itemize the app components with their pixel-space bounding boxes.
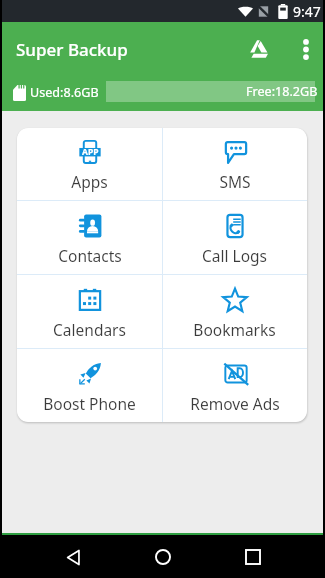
button[interactable]: Back — [54, 538, 92, 576]
button[interactable]: APP — [17, 128, 162, 200]
staticText: Free:18.2GB — [246, 83, 318, 100]
button[interactable]: Google Drive backup — [240, 31, 276, 67]
staticText: SMS — [219, 171, 251, 192]
staticText: 9:47 — [293, 2, 321, 21]
button[interactable]: Contacts — [17, 201, 162, 274]
button[interactable]: SMS — [162, 128, 307, 200]
staticText: Contacts — [58, 245, 122, 266]
button[interactable]: More options — [288, 31, 324, 67]
button[interactable]: Call Logs — [162, 201, 307, 274]
staticText: Calendars — [53, 319, 126, 340]
staticText: Remove Ads — [190, 393, 280, 414]
button[interactable]: Boost Phone — [17, 349, 162, 422]
staticText: Call Logs — [202, 245, 267, 266]
button[interactable]: Bookmarks — [162, 275, 307, 348]
button[interactable]: Calendars — [17, 275, 162, 348]
button[interactable]: Home — [144, 538, 182, 576]
button[interactable]: Remove Ads — [162, 349, 307, 422]
staticText: Bookmarks — [193, 319, 276, 340]
staticText: APP — [82, 146, 99, 158]
staticText: Super Backup — [16, 38, 128, 61]
staticText: Used:8.6GB — [30, 84, 99, 101]
staticText: Boost Phone — [43, 393, 136, 414]
staticText: Apps — [71, 171, 108, 192]
button[interactable]: Recent apps — [234, 538, 272, 576]
